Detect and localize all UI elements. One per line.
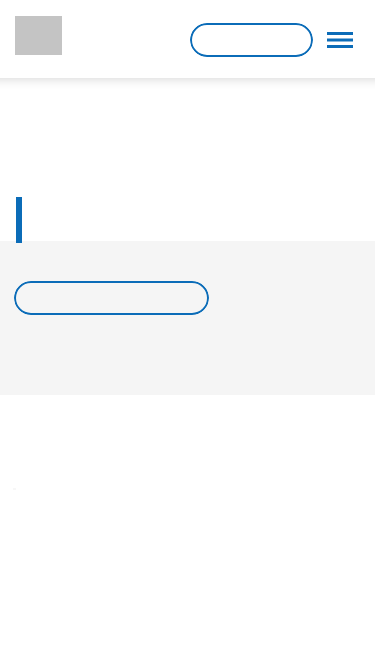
button[interactable]: Learn more [14,281,209,315]
button[interactable]: Sign in [190,23,313,57]
button[interactable]: Menu [318,24,361,56]
